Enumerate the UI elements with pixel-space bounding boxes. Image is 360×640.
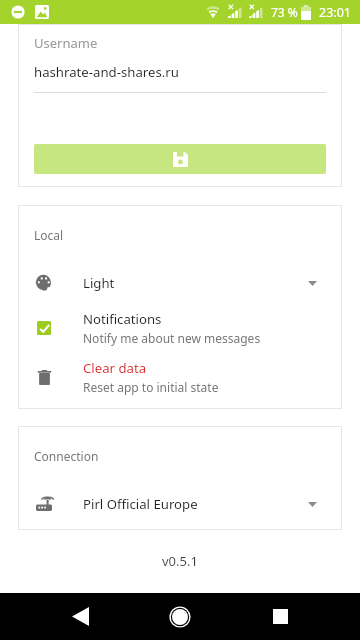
other: Expand theme — [308, 281, 317, 286]
staticText: Local — [34, 227, 64, 243]
button[interactable]: Light — [34, 264, 326, 302]
staticText: Connection — [34, 448, 99, 464]
button[interactable]: Notifications — [34, 307, 326, 349]
staticText: Username — [34, 34, 98, 52]
staticText: Light — [83, 274, 115, 292]
staticText: 23:01 — [319, 4, 351, 21]
button[interactable]: Back — [30, 593, 130, 640]
staticText: Notify me about new messages — [83, 330, 261, 346]
button[interactable]: Home — [130, 593, 230, 640]
staticText: v0.5.1 — [162, 552, 198, 570]
staticText: Reset app to initial state — [83, 379, 219, 395]
staticText: Pirl Official Europe — [83, 495, 198, 513]
staticText: Clear data — [83, 359, 147, 377]
button[interactable]: Clear data — [34, 356, 326, 398]
staticText: hashrate-and-shares.ru — [34, 63, 179, 81]
button[interactable]: Save — [34, 144, 326, 174]
button[interactable]: Recent apps — [230, 593, 330, 640]
staticText: Notifications — [83, 310, 162, 328]
button[interactable]: Pirl Official Europe — [34, 485, 326, 523]
staticText: 73 % — [271, 4, 298, 20]
other: Expand connection — [308, 502, 317, 507]
